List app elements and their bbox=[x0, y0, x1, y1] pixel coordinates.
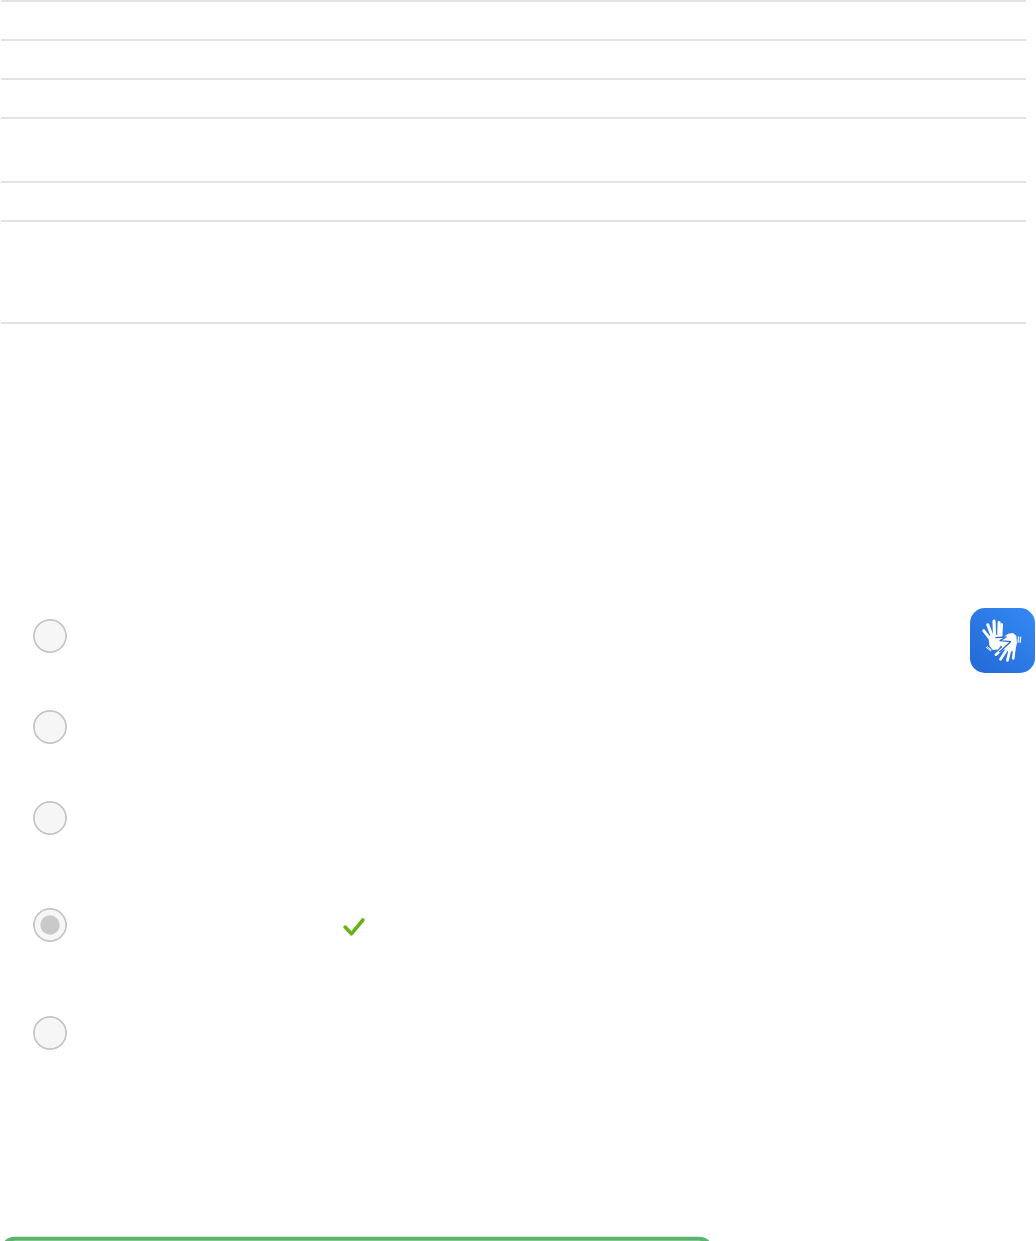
button[interactable]: Submit bbox=[0, 1233, 714, 1241]
button[interactable]: Accessibility shortcut bbox=[970, 608, 1035, 673]
button[interactable]: Option 4, selected, correct answer bbox=[0, 888, 1036, 966]
button[interactable]: Option 1 bbox=[0, 600, 1036, 678]
